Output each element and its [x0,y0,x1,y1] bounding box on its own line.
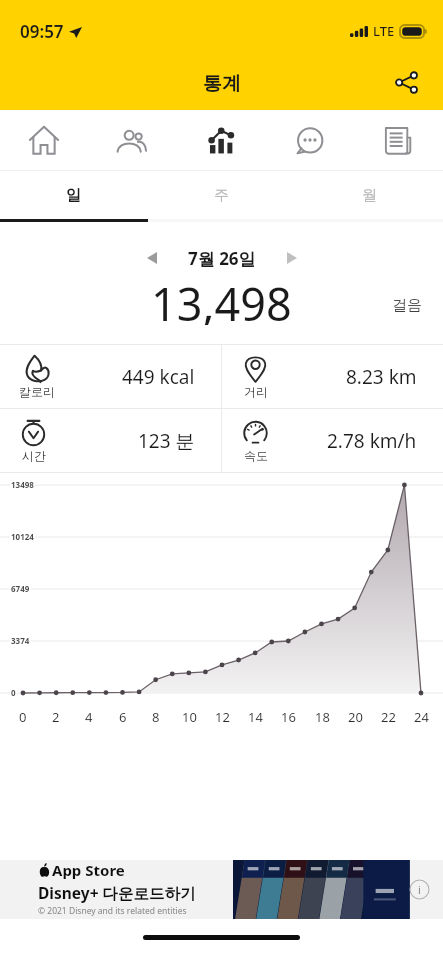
staticText: 09:57 [20,20,64,43]
button[interactable]: 칼로리 [0,345,221,408]
button[interactable]: 일 [0,171,147,219]
staticText: 7월 26일 [188,247,256,270]
button[interactable]: 속도 [222,409,443,472]
staticText: 0 [19,708,27,726]
staticText: 주 [214,186,229,205]
button[interactable]: Statistics [176,110,265,170]
button[interactable]: Ad information [409,879,430,900]
staticText: Disney+ 다운로드하기 [38,882,196,903]
staticText: 3374 [11,635,30,646]
staticText: 거리 [244,384,268,399]
button[interactable]: Chat [265,110,354,170]
button[interactable]: 주 [147,171,295,219]
button[interactable]: 거리 [222,345,443,408]
button[interactable]: Home [0,110,88,170]
staticText: 123 분 [138,428,195,454]
staticText: 16 [281,708,296,726]
staticText: 6749 [11,583,30,594]
staticText: 4 [85,708,93,726]
staticText: App Store [52,860,125,880]
staticText: 13498 [11,479,34,490]
staticText: 칼로리 [19,384,55,399]
button[interactable]: Previous day [135,241,169,275]
staticText: 걸음 [392,296,422,315]
button[interactable]: Next day [275,241,309,275]
staticText: 13,498 [151,273,292,325]
staticText: 0 [11,687,16,698]
staticText: 12 [215,708,230,726]
staticText: 10124 [11,531,34,542]
staticText: 통계 [203,72,241,96]
staticText: 6 [119,708,127,726]
staticText: 14 [248,708,263,726]
staticText: 449 kcal [122,364,195,390]
staticText: 8.23 km [346,364,417,390]
staticText: 10 [182,708,197,726]
staticText: i [418,882,421,897]
button[interactable]: App Store [0,860,443,919]
staticText: LTE [373,22,395,40]
staticText: 월 [362,186,377,205]
staticText: 20 [348,708,363,726]
button[interactable]: 시간 [0,409,221,472]
staticText: 일 [66,186,81,205]
staticText: 시간 [22,448,46,463]
staticText: © 2021 Disney and its related entities [38,905,187,917]
staticText: 2.78 km/h [327,428,417,454]
staticText: 22 [381,708,396,726]
staticText: 속도 [244,448,268,463]
button[interactable]: Friends [88,110,176,170]
button[interactable]: News [354,110,443,170]
staticText: 24 [414,708,429,726]
staticText: 2 [52,708,60,726]
staticText: 18 [315,708,330,726]
staticText: 8 [152,708,160,726]
button[interactable]: Share [386,62,426,102]
button[interactable]: 월 [295,171,443,219]
